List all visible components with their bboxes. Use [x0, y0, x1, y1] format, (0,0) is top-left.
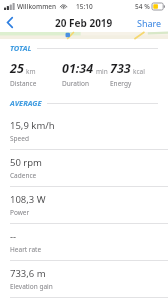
- staticText: 25: [10, 60, 24, 77]
- staticText: Duration: [62, 79, 89, 88]
- staticText: Speed: [10, 134, 29, 143]
- staticText: Elevation gain: [10, 282, 53, 291]
- staticText: AVERAGE: [10, 98, 42, 108]
- staticText: Share: [137, 17, 162, 29]
- staticText: 50 rpm: [10, 156, 42, 169]
- staticText: Energy: [110, 79, 132, 88]
- staticText: 108,3 W: [10, 193, 46, 206]
- button[interactable]: 733,6 m: [0, 260, 168, 297]
- button[interactable]: 108,3 W: [0, 186, 168, 223]
- staticText: 20 Feb 2019: [55, 16, 113, 30]
- staticText: 733,6 m: [10, 267, 46, 280]
- staticText: --: [10, 230, 17, 243]
- button[interactable]: Share: [131, 14, 168, 32]
- staticText: min: [96, 67, 108, 76]
- staticText: 15,9 km/h: [10, 119, 55, 132]
- staticText: Heart rate: [10, 245, 42, 254]
- staticText: 733: [110, 60, 131, 77]
- staticText: kcal: [133, 67, 145, 76]
- staticText: 54 %: [135, 2, 150, 11]
- staticText: Distance: [10, 79, 37, 88]
- staticText: Cadence: [10, 171, 37, 180]
- staticText: 01:34: [62, 60, 94, 77]
- staticText: km: [26, 67, 36, 76]
- staticText: Power: [10, 208, 30, 217]
- staticText: TOTAL: [10, 43, 32, 53]
- button[interactable]: 15,9 km/h: [0, 113, 168, 149]
- staticText: Willkommen: [17, 2, 57, 11]
- staticText: 15:10: [76, 2, 93, 11]
- button[interactable]: --: [0, 223, 168, 260]
- button[interactable]: -33 %: [0, 297, 168, 300]
- button[interactable]: Back: [0, 14, 20, 31]
- button[interactable]: 50 rpm: [0, 149, 168, 186]
